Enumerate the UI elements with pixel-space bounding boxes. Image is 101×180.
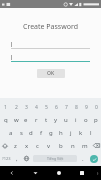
- staticText: n: [71, 142, 75, 150]
- button[interactable]: q: [0, 113, 11, 126]
- button[interactable]: o: [81, 113, 91, 126]
- button[interactable]: u: [61, 113, 71, 126]
- button[interactable]: 0: [91, 101, 101, 113]
- staticText: 9: [85, 104, 88, 111]
- button[interactable]: p: [91, 113, 101, 126]
- button[interactable]: Back: [0, 166, 24, 180]
- button[interactable]: i: [71, 113, 81, 126]
- button[interactable]: Change language: [21, 152, 31, 165]
- button[interactable]: n: [67, 139, 79, 152]
- button[interactable]: y: [51, 113, 61, 126]
- staticText: b: [59, 142, 63, 150]
- button[interactable]: Enter: [87, 152, 101, 165]
- button[interactable]: 4: [31, 101, 41, 113]
- staticText: 2: [15, 104, 18, 111]
- button[interactable]: e: [21, 113, 31, 126]
- staticText: 4: [35, 104, 38, 111]
- button[interactable]: OK: [37, 69, 65, 78]
- button[interactable]: Tiếng Việt: [33, 155, 77, 162]
- button[interactable]: j: [66, 126, 76, 139]
- button[interactable]: 7: [61, 101, 71, 113]
- staticText: 1: [4, 104, 7, 111]
- staticText: Create Password: [11, 22, 90, 32]
- staticText: 8: [75, 104, 78, 111]
- staticText: e: [24, 116, 28, 124]
- button[interactable]: 6: [51, 101, 61, 113]
- staticText: s: [20, 129, 23, 137]
- button[interactable]: ,: [13, 152, 21, 165]
- button[interactable]: f: [36, 126, 46, 139]
- button[interactable]: Home: [47, 166, 70, 180]
- button[interactable]: 2: [11, 101, 21, 113]
- button[interactable]: More: [93, 166, 101, 180]
- button[interactable]: [11, 41, 90, 49]
- staticText: OK: [47, 70, 55, 77]
- button[interactable]: .: [79, 152, 87, 165]
- button[interactable]: 1: [0, 101, 11, 113]
- staticText: o: [84, 116, 88, 124]
- button[interactable]: [11, 54, 90, 62]
- staticText: 3: [25, 104, 28, 111]
- staticText: m: [82, 142, 88, 150]
- staticText: t: [45, 116, 48, 124]
- button[interactable]: w: [11, 113, 21, 126]
- staticText: 0: [95, 104, 98, 111]
- button[interactable]: 5: [41, 101, 51, 113]
- staticText: 5: [45, 104, 48, 111]
- button[interactable]: z: [10, 139, 21, 152]
- button[interactable]: g: [46, 126, 56, 139]
- button[interactable]: v: [43, 139, 55, 152]
- button[interactable]: h: [56, 126, 66, 139]
- staticText: r: [35, 116, 38, 124]
- staticText: a: [9, 129, 13, 137]
- button[interactable]: r: [31, 113, 41, 126]
- staticText: y: [54, 116, 58, 124]
- button[interactable]: k: [76, 126, 86, 139]
- button[interactable]: c: [32, 139, 43, 152]
- button[interactable]: m: [79, 139, 91, 152]
- staticText: k: [79, 129, 83, 137]
- staticText: u: [64, 116, 68, 124]
- button[interactable]: 8: [71, 101, 81, 113]
- staticText: p: [94, 116, 98, 124]
- button[interactable]: Shift: [0, 139, 10, 152]
- staticText: h: [59, 129, 63, 137]
- staticText: l: [90, 129, 92, 137]
- button[interactable]: Backspace: [91, 139, 101, 152]
- button[interactable]: 3: [21, 101, 31, 113]
- staticText: ,: [16, 155, 18, 163]
- staticText: .: [82, 155, 84, 163]
- staticText: x: [25, 142, 29, 150]
- button[interactable]: a: [5, 126, 16, 139]
- staticText: j: [70, 129, 72, 137]
- button[interactable]: Hide keyboard: [24, 166, 47, 180]
- staticText: i: [75, 116, 77, 124]
- button[interactable]: t: [41, 113, 51, 126]
- staticText: 7: [65, 104, 68, 111]
- staticText: c: [36, 142, 39, 150]
- staticText: w: [14, 116, 19, 124]
- staticText: v: [47, 142, 51, 150]
- button[interactable]: b: [55, 139, 67, 152]
- button[interactable]: d: [26, 126, 36, 139]
- button[interactable]: l: [86, 126, 96, 139]
- staticText: f: [40, 129, 43, 137]
- staticText: g: [49, 129, 53, 137]
- staticText: q: [4, 116, 8, 124]
- button[interactable]: s: [16, 126, 26, 139]
- staticText: ?123: [2, 156, 11, 161]
- button[interactable]: 9: [81, 101, 91, 113]
- staticText: Tiếng Việt: [47, 156, 64, 161]
- staticText: d: [29, 129, 33, 137]
- staticText: 6: [55, 104, 58, 111]
- button[interactable]: Recent apps: [70, 166, 93, 180]
- button[interactable]: x: [21, 139, 32, 152]
- button[interactable]: ?123: [0, 152, 13, 165]
- staticText: z: [14, 142, 17, 150]
